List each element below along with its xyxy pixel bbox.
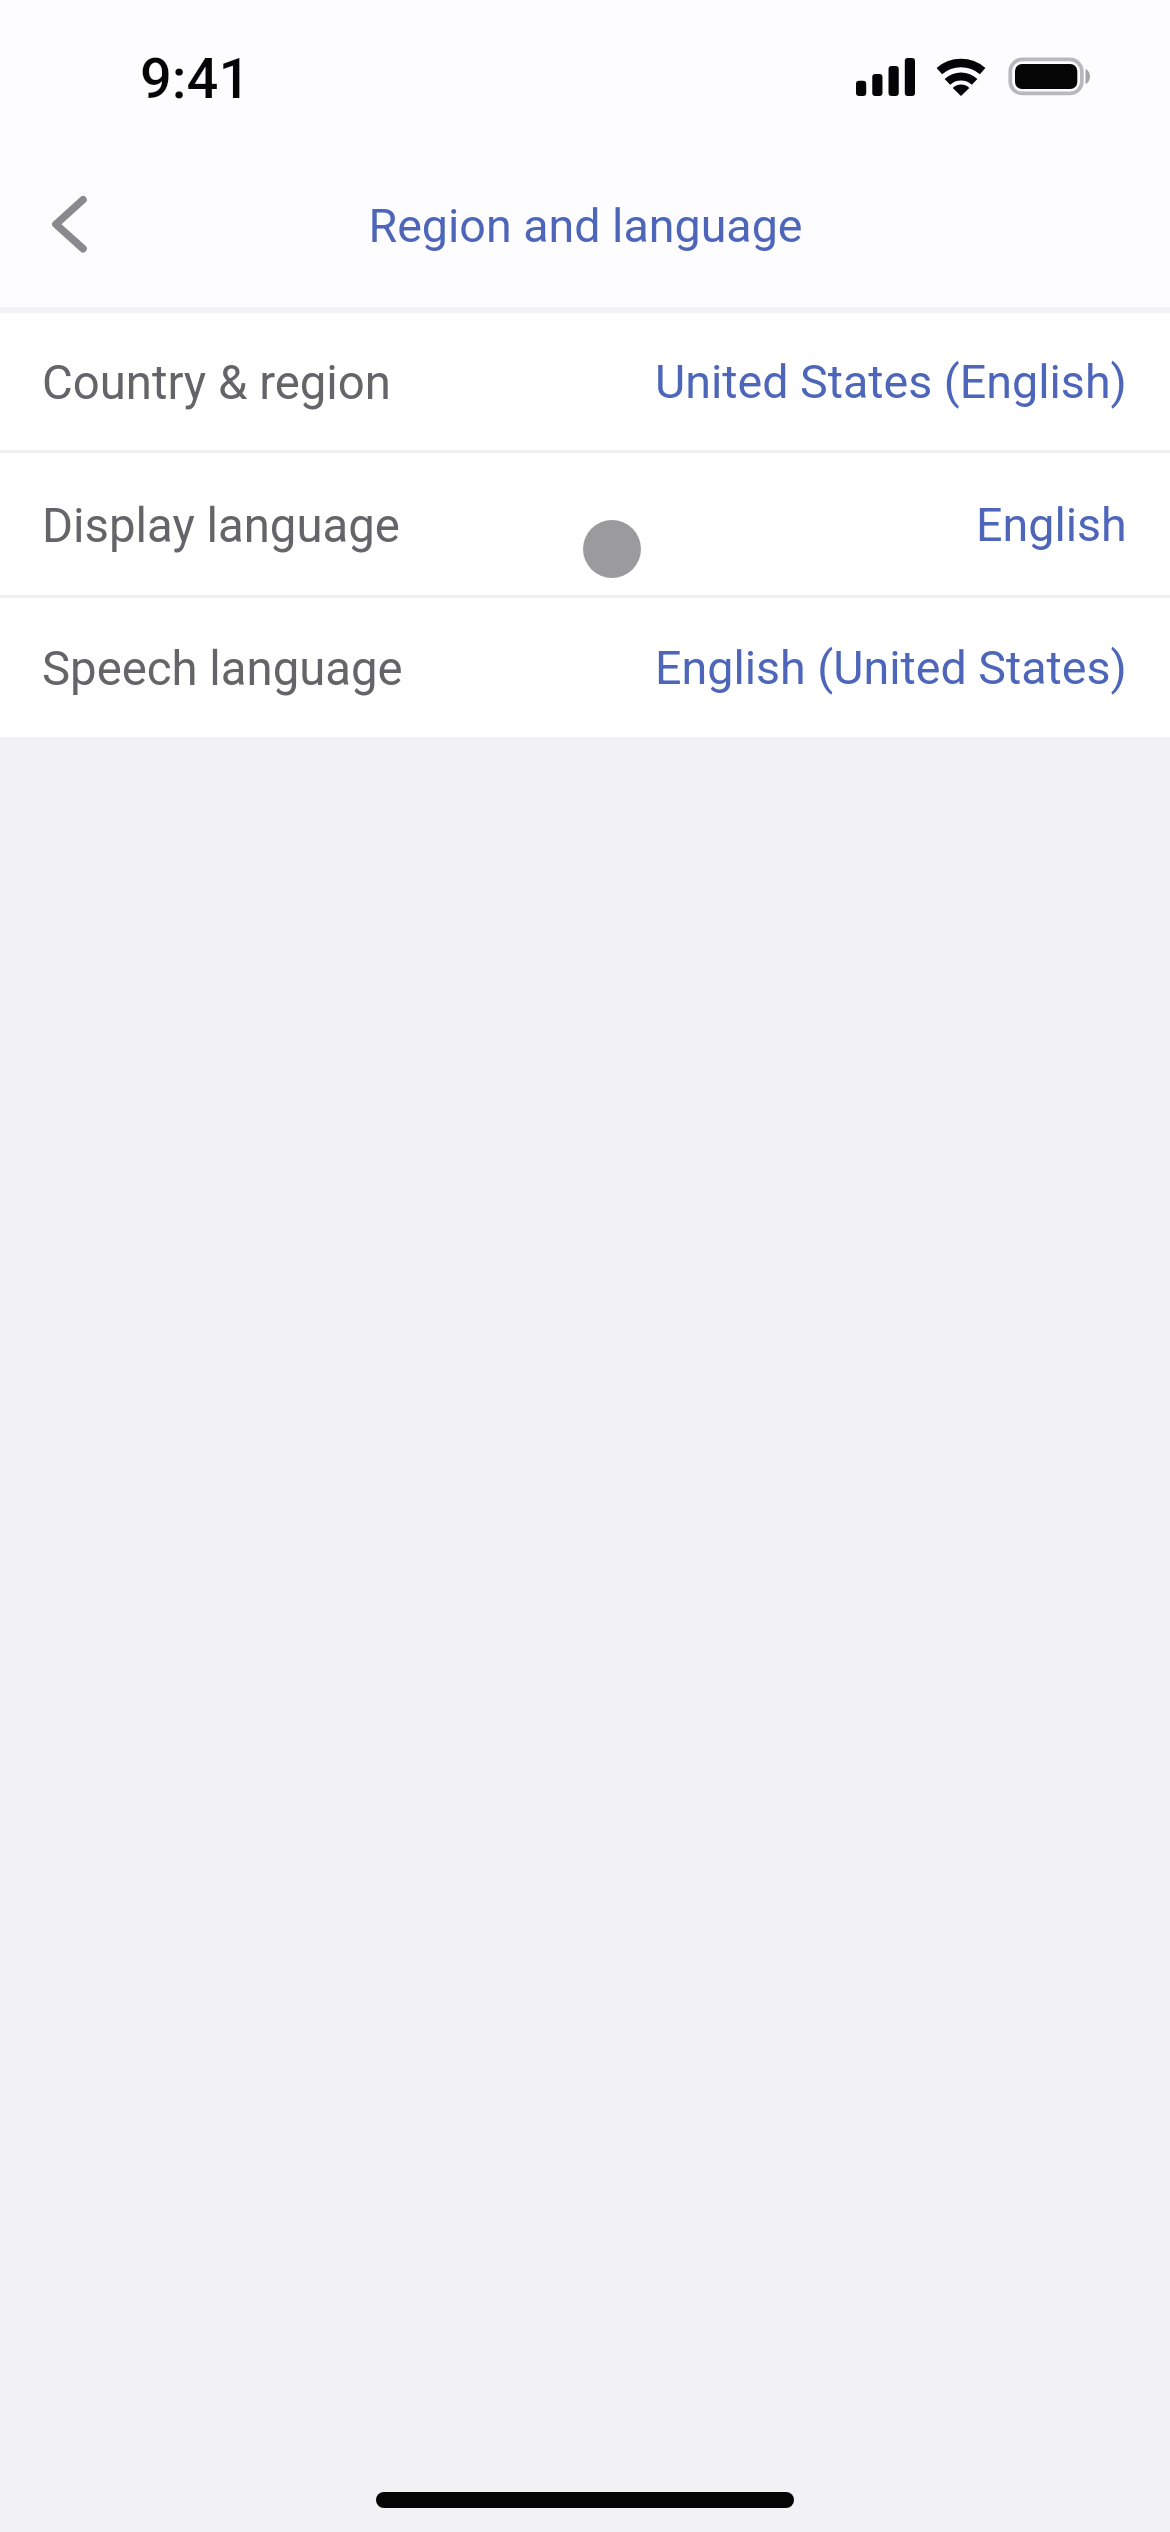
button[interactable]: Speech language — [0, 598, 1170, 737]
staticText: 9:41 — [140, 46, 251, 112]
staticText: English (United States) — [655, 641, 1127, 696]
button[interactable]: Country & region — [0, 313, 1170, 450]
staticText: United States (English) — [655, 355, 1127, 410]
staticText: Speech language — [42, 641, 403, 696]
staticText: Region and language — [368, 199, 803, 254]
staticText: Country & region — [42, 355, 391, 410]
button[interactable]: Display language — [0, 453, 1170, 595]
button[interactable]: Back — [14, 155, 128, 269]
staticText: English — [976, 498, 1127, 553]
staticText: Display language — [42, 498, 400, 553]
